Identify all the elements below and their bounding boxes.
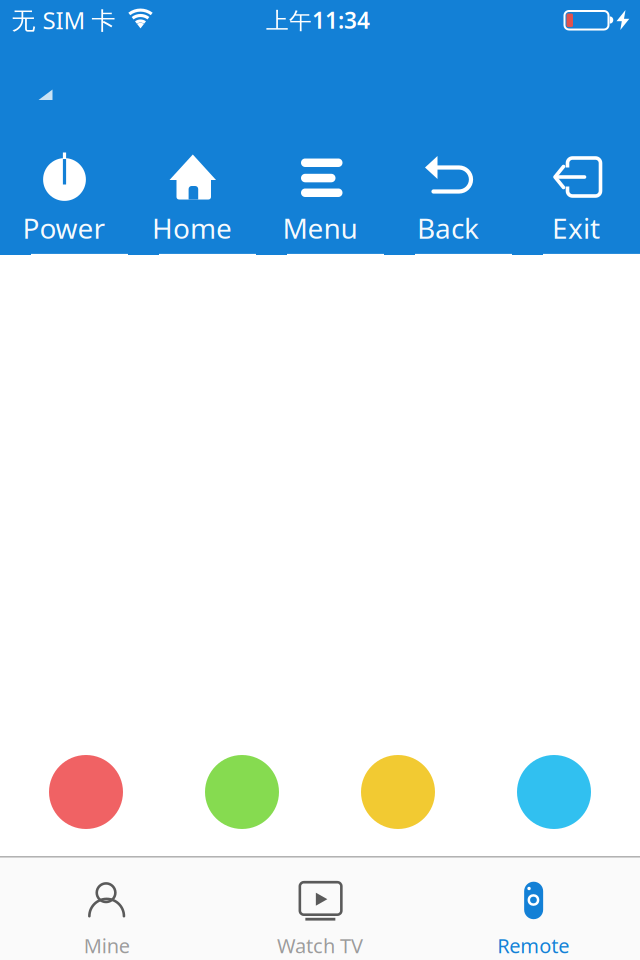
staticText: Menu — [282, 209, 357, 247]
button[interactable]: Yellow key — [361, 755, 435, 829]
staticText: 上午11:34 — [266, 5, 370, 35]
staticText: 无 SIM 卡 — [11, 4, 115, 36]
button[interactable]: Watch TV — [213, 857, 427, 960]
button[interactable]: Green key — [205, 755, 279, 829]
button[interactable]: Power — [0, 140, 128, 255]
button[interactable]: Back — [384, 140, 512, 255]
button[interactable]: Remote — [427, 857, 640, 960]
staticText: Power — [22, 209, 105, 247]
button[interactable]: Blue key — [517, 755, 591, 829]
button[interactable]: Mine — [0, 857, 213, 960]
staticText: Mine — [84, 932, 130, 959]
button[interactable]: Red key — [49, 755, 123, 829]
staticText: Home — [152, 209, 232, 247]
button[interactable]: Home — [128, 140, 256, 255]
staticText: Exit — [552, 209, 600, 247]
button[interactable]: Menu — [256, 140, 384, 255]
staticText: Remote — [497, 932, 569, 959]
staticText: Back — [417, 209, 479, 247]
button[interactable]: Exit — [512, 140, 640, 255]
staticText: Watch TV — [277, 932, 363, 959]
